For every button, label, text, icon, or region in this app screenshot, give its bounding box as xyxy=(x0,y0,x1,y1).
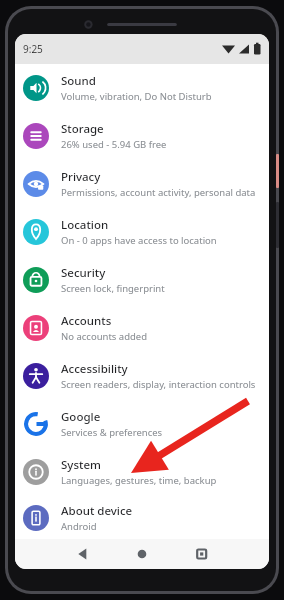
button[interactable]: System xyxy=(15,448,269,496)
staticText: Accounts xyxy=(61,313,112,329)
button[interactable]: Sound xyxy=(15,64,269,112)
button[interactable]: Security xyxy=(15,256,269,304)
staticText: On - 0 apps have access to location xyxy=(61,234,217,247)
staticText: Security xyxy=(61,265,106,281)
button[interactable]: Accessibility xyxy=(15,352,269,400)
staticText: Screen lock, fingerprint xyxy=(61,282,165,295)
staticText: Privacy xyxy=(61,169,101,185)
staticText: Volume, vibration, Do Not Disturb xyxy=(61,90,212,103)
staticText: Sound xyxy=(61,73,96,89)
staticText: Location xyxy=(61,217,109,233)
button[interactable]: Privacy xyxy=(15,160,269,208)
staticText: Languages, gestures, time, backup xyxy=(61,474,217,487)
button[interactable]: Google xyxy=(15,400,269,448)
staticText: Permissions, account activity, personal … xyxy=(61,186,256,199)
staticText: Android xyxy=(61,520,97,533)
button[interactable]: Location xyxy=(15,208,269,256)
button[interactable]: Storage xyxy=(15,112,269,160)
staticText: Storage xyxy=(61,121,104,137)
staticText: Google xyxy=(61,409,101,425)
staticText: About device xyxy=(61,503,133,519)
staticText: 9:25 xyxy=(23,42,43,56)
staticText: Screen readers, display, interaction con… xyxy=(61,378,256,391)
button[interactable]: Accounts xyxy=(15,304,269,352)
staticText: Accessibility xyxy=(61,361,128,377)
button[interactable] xyxy=(15,539,269,569)
staticText: System xyxy=(61,457,101,473)
staticText: No accounts added xyxy=(61,330,148,343)
staticText: Services & preferences xyxy=(61,426,163,439)
button[interactable]: About device xyxy=(15,496,269,539)
staticText: 26% used - 5.94 GB free xyxy=(61,138,167,151)
